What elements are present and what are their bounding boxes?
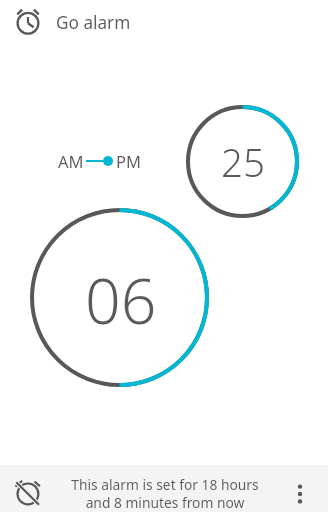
button[interactable]: AM xyxy=(55,148,147,174)
staticText: 25 xyxy=(221,136,265,188)
staticText: PM xyxy=(116,150,141,172)
button[interactable]: Alarm xyxy=(14,8,42,36)
button[interactable]: Minutes 25 xyxy=(186,105,299,218)
staticText: This alarm is set for 18 hours and 8 min… xyxy=(60,475,270,512)
button[interactable]: Hours 06 xyxy=(30,208,209,387)
staticText: 06 xyxy=(85,257,157,342)
button[interactable]: Alarm off xyxy=(16,480,44,508)
button[interactable]: More options xyxy=(280,474,320,512)
staticText: Go alarm xyxy=(56,11,131,34)
staticText: AM xyxy=(58,150,84,172)
